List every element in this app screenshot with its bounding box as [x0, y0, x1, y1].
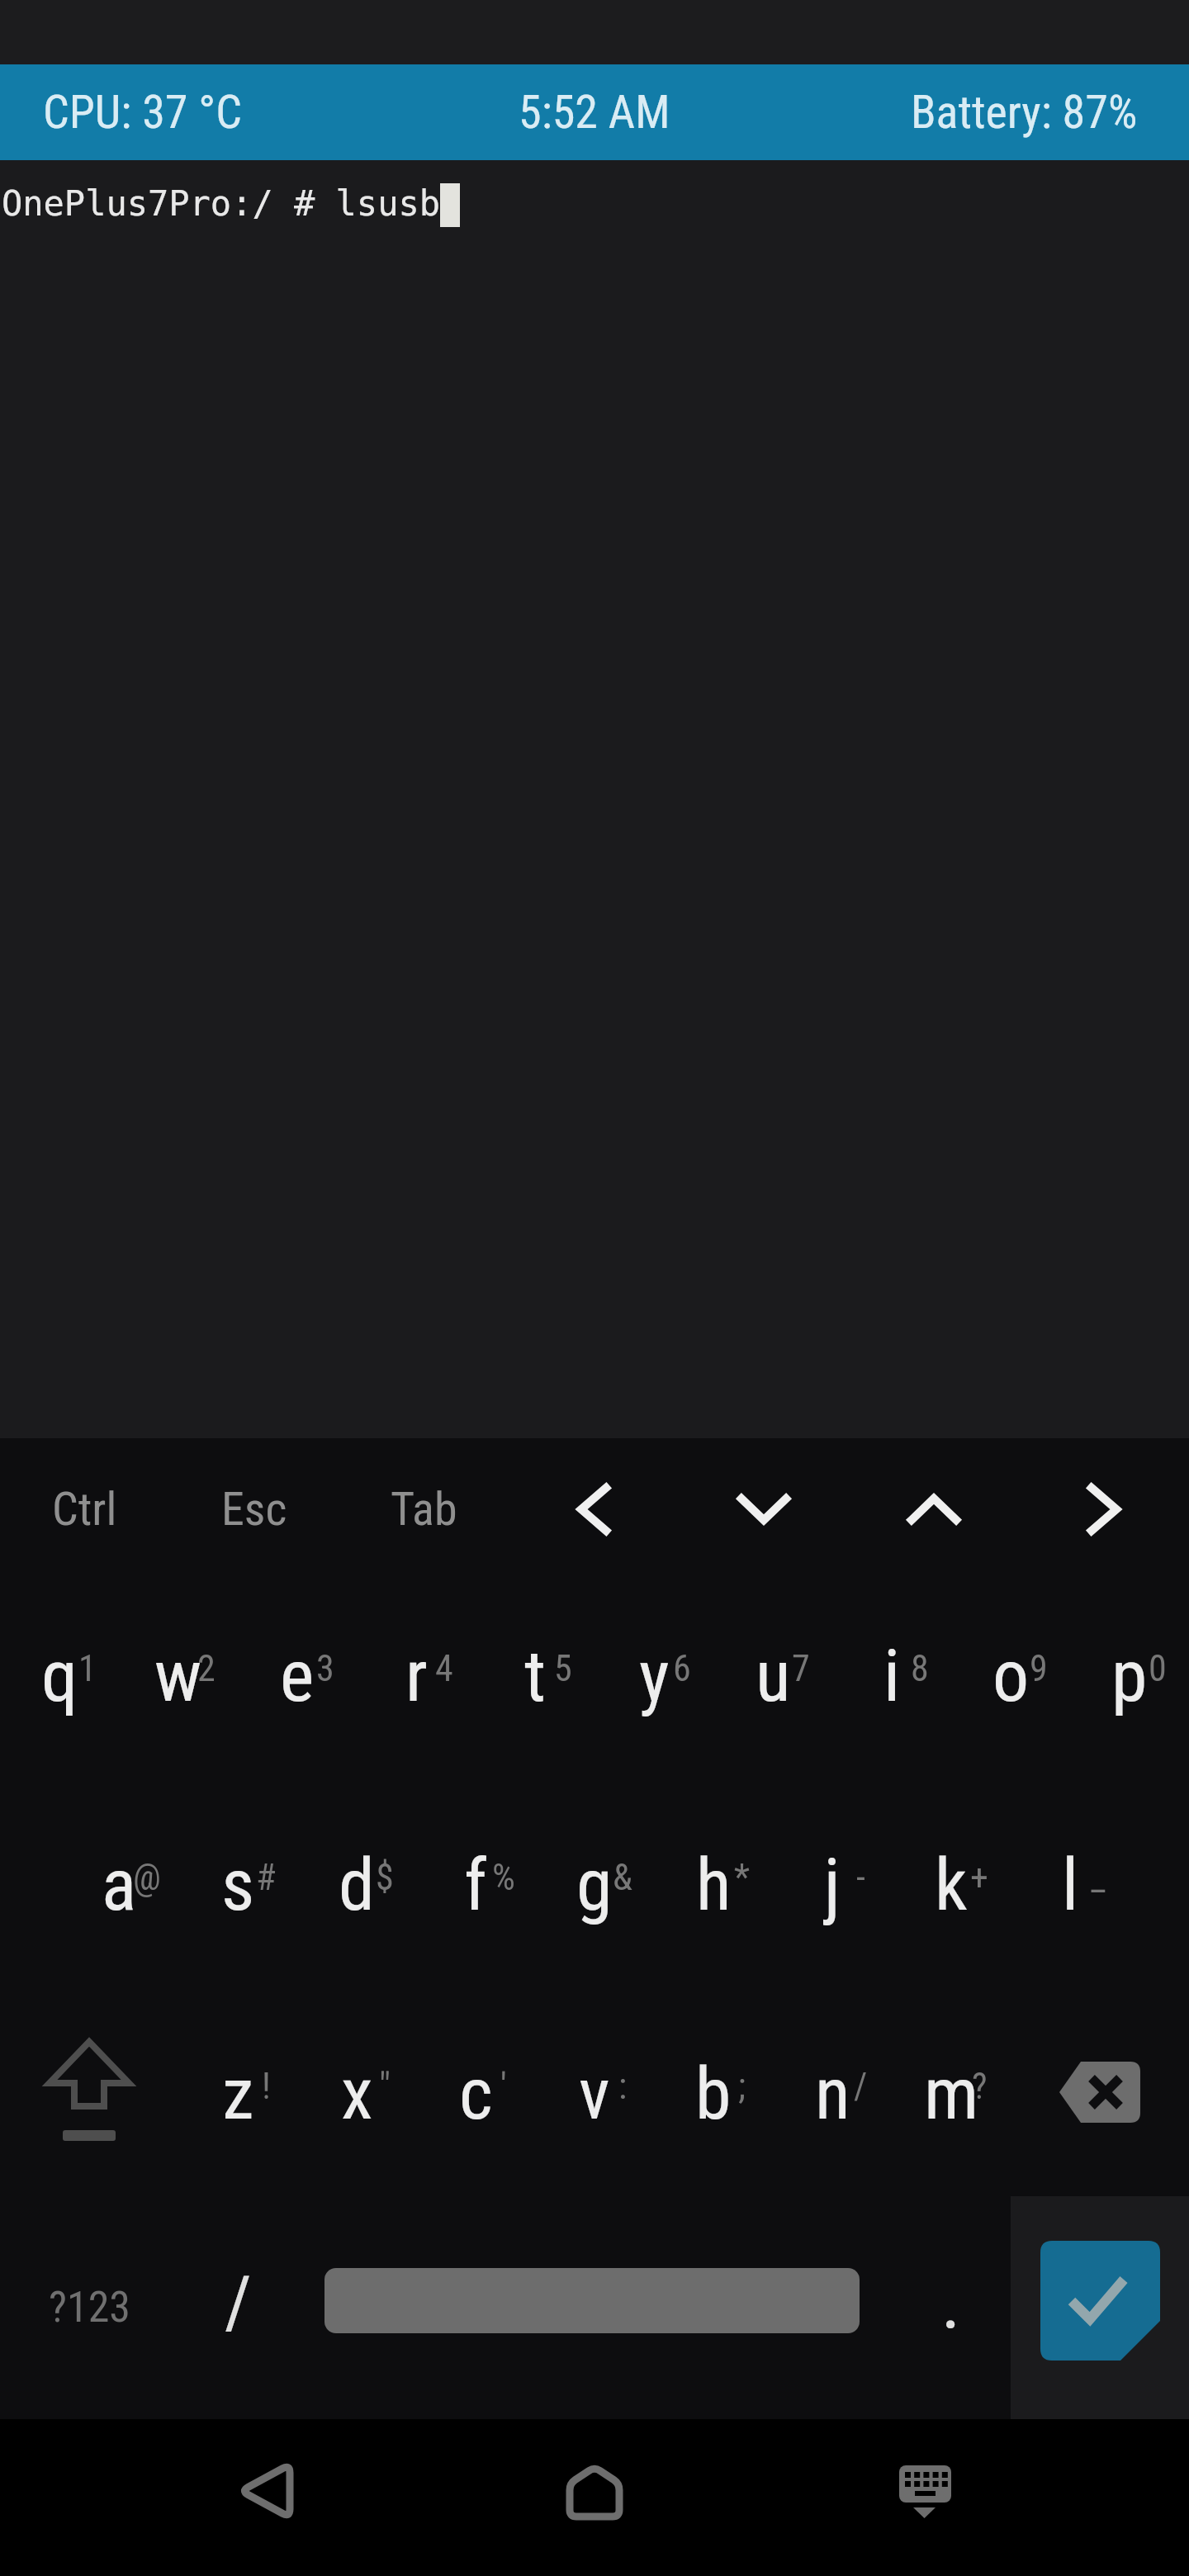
staticText: l [1062, 1842, 1079, 1927]
staticText: 1 [78, 1647, 97, 1690]
button[interactable] [561, 2465, 628, 2531]
staticText: ?123 [49, 2282, 130, 2332]
staticText: i [883, 1633, 901, 1718]
staticText: _ [1091, 1856, 1106, 1899]
staticText: 6 [673, 1647, 691, 1690]
staticText: o [992, 1633, 1030, 1718]
staticText: u [756, 1633, 791, 1718]
staticText: . [941, 2260, 961, 2345]
button[interactable] [297, 2206, 892, 2415]
button[interactable]: Esc [169, 1438, 339, 1579]
button[interactable]: g [535, 1788, 654, 1997]
button[interactable]: j [773, 1788, 892, 1997]
button[interactable]: l [1011, 1788, 1130, 1997]
button[interactable]: y [594, 1579, 713, 1788]
staticText: % [492, 1856, 515, 1899]
button[interactable]: e [238, 1579, 357, 1788]
staticText: v [579, 2051, 610, 2136]
button[interactable] [849, 1438, 1019, 1579]
button[interactable] [232, 2465, 298, 2531]
staticText: + [970, 1856, 988, 1899]
staticText: m [924, 2051, 979, 2136]
staticText: 5:52 AM [519, 85, 670, 140]
staticText: $ [376, 1856, 394, 1899]
button[interactable]: f [416, 1788, 535, 1997]
button[interactable]: t [476, 1579, 594, 1788]
button[interactable]: d [297, 1788, 416, 1997]
button[interactable]: m [892, 1997, 1011, 2206]
button[interactable]: w [119, 1579, 238, 1788]
button[interactable]: u [713, 1579, 832, 1788]
button[interactable]: i [832, 1579, 951, 1788]
button[interactable] [892, 2457, 958, 2531]
staticText: t [524, 1633, 547, 1718]
staticText: y [639, 1633, 670, 1718]
staticText: r [405, 1633, 428, 1718]
staticText: / [854, 2065, 868, 2108]
button[interactable]: . [892, 2206, 1011, 2415]
staticText: q [41, 1633, 78, 1718]
button[interactable]: r [357, 1579, 476, 1788]
staticText: s [221, 1842, 255, 1927]
staticText: x [341, 2051, 373, 2136]
button[interactable]: Tab [339, 1438, 509, 1579]
button[interactable] [1011, 1997, 1189, 2206]
staticText: z [222, 2051, 254, 2136]
staticText: g [576, 1842, 613, 1927]
staticText: 4 [435, 1647, 453, 1690]
staticText: ' [500, 2065, 507, 2108]
button[interactable]: s [178, 1788, 297, 1997]
staticText: b [695, 2051, 732, 2136]
staticText: 0 [1149, 1647, 1167, 1690]
staticText: e [280, 1633, 315, 1718]
staticText: 2 [197, 1647, 216, 1690]
button[interactable]: a [59, 1788, 178, 1997]
staticText: 8 [911, 1647, 929, 1690]
staticText: * [734, 1856, 750, 1899]
staticText: 3 [316, 1647, 334, 1690]
button[interactable]: Ctrl [0, 1438, 169, 1579]
staticText: p [1111, 1633, 1148, 1718]
staticText: - [856, 1856, 865, 1899]
button[interactable]: z [178, 1997, 297, 2206]
button[interactable]: p [1070, 1579, 1189, 1788]
button[interactable] [679, 1438, 849, 1579]
button[interactable]: h [654, 1788, 773, 1997]
staticText: : [618, 2065, 628, 2108]
staticText: Esc [221, 1482, 287, 1537]
button[interactable]: n [773, 1997, 892, 2206]
staticText: a [102, 1842, 137, 1927]
staticText: Tab [391, 1482, 457, 1537]
staticText: @ [133, 1856, 161, 1899]
staticText: 7 [792, 1647, 810, 1690]
staticText: f [464, 1842, 487, 1927]
staticText: " [379, 2065, 391, 2108]
staticText: d [339, 1842, 375, 1927]
staticText: h [696, 1842, 732, 1927]
staticText: c [459, 2051, 493, 2136]
staticText: Battery: 87% [911, 85, 1138, 140]
staticText: / [225, 2260, 252, 2345]
button[interactable] [509, 1438, 679, 1579]
staticText: OnePlus7Pro:/ # lsusb [2, 183, 441, 224]
button[interactable]: x [297, 1997, 416, 2206]
staticText: 5 [554, 1647, 572, 1690]
staticText: ! [262, 2065, 271, 2108]
button[interactable]: / [178, 2206, 297, 2415]
button[interactable]: v [535, 1997, 654, 2206]
button[interactable]: b [654, 1997, 773, 2206]
button[interactable]: k [892, 1788, 1011, 1997]
staticText: 9 [1030, 1647, 1048, 1690]
staticText: # [256, 1856, 277, 1899]
staticText: w [154, 1633, 202, 1718]
staticText: ? [972, 2065, 988, 2108]
button[interactable]: q [0, 1579, 119, 1788]
button[interactable]: c [416, 1997, 535, 2206]
staticText: Ctrl [52, 1482, 117, 1537]
button[interactable] [0, 1997, 178, 2206]
button[interactable]: ?123 [0, 2206, 178, 2415]
button[interactable] [1011, 2206, 1189, 2415]
staticText: ; [738, 2065, 746, 2108]
button[interactable] [1019, 1438, 1189, 1579]
button[interactable]: o [951, 1579, 1070, 1788]
